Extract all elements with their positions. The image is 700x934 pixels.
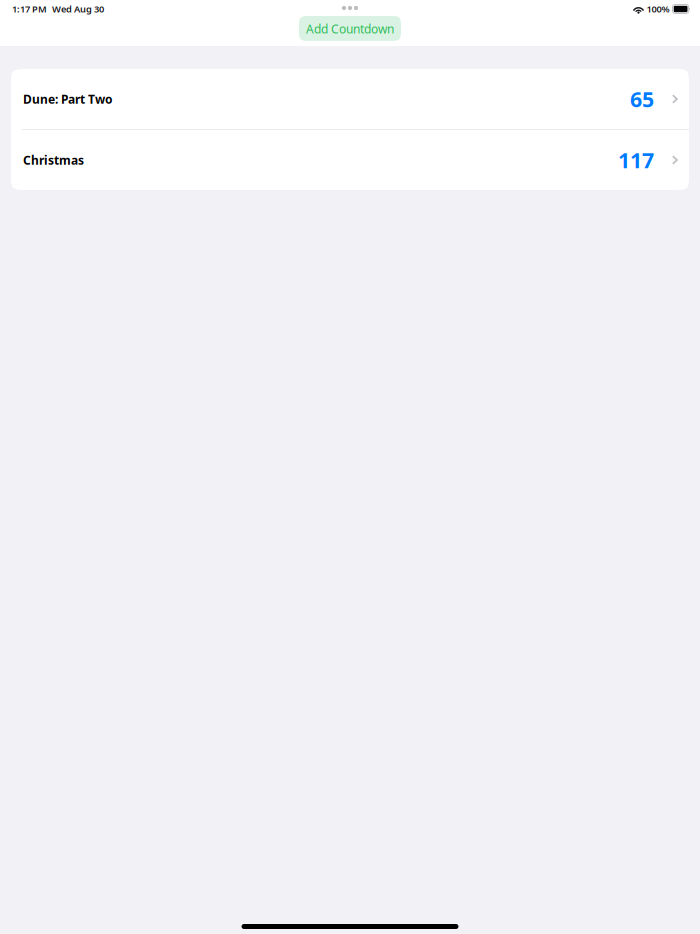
staticText: Dune: Part Two (23, 91, 113, 107)
button[interactable]: Multitasking controls (328, 0, 372, 16)
staticText: Wed Aug 30 (52, 3, 104, 15)
staticText: 1:17 PM (12, 3, 47, 15)
button[interactable]: Christmas (11, 130, 689, 190)
staticText: Christmas (23, 152, 84, 168)
staticText: 65 (630, 85, 654, 113)
button[interactable]: Dune: Part Two (11, 69, 689, 129)
staticText: Add Countdown (306, 21, 394, 37)
button[interactable]: Add Countdown (299, 16, 401, 41)
staticText: 117 (618, 146, 654, 174)
staticText: 100% (646, 3, 669, 15)
